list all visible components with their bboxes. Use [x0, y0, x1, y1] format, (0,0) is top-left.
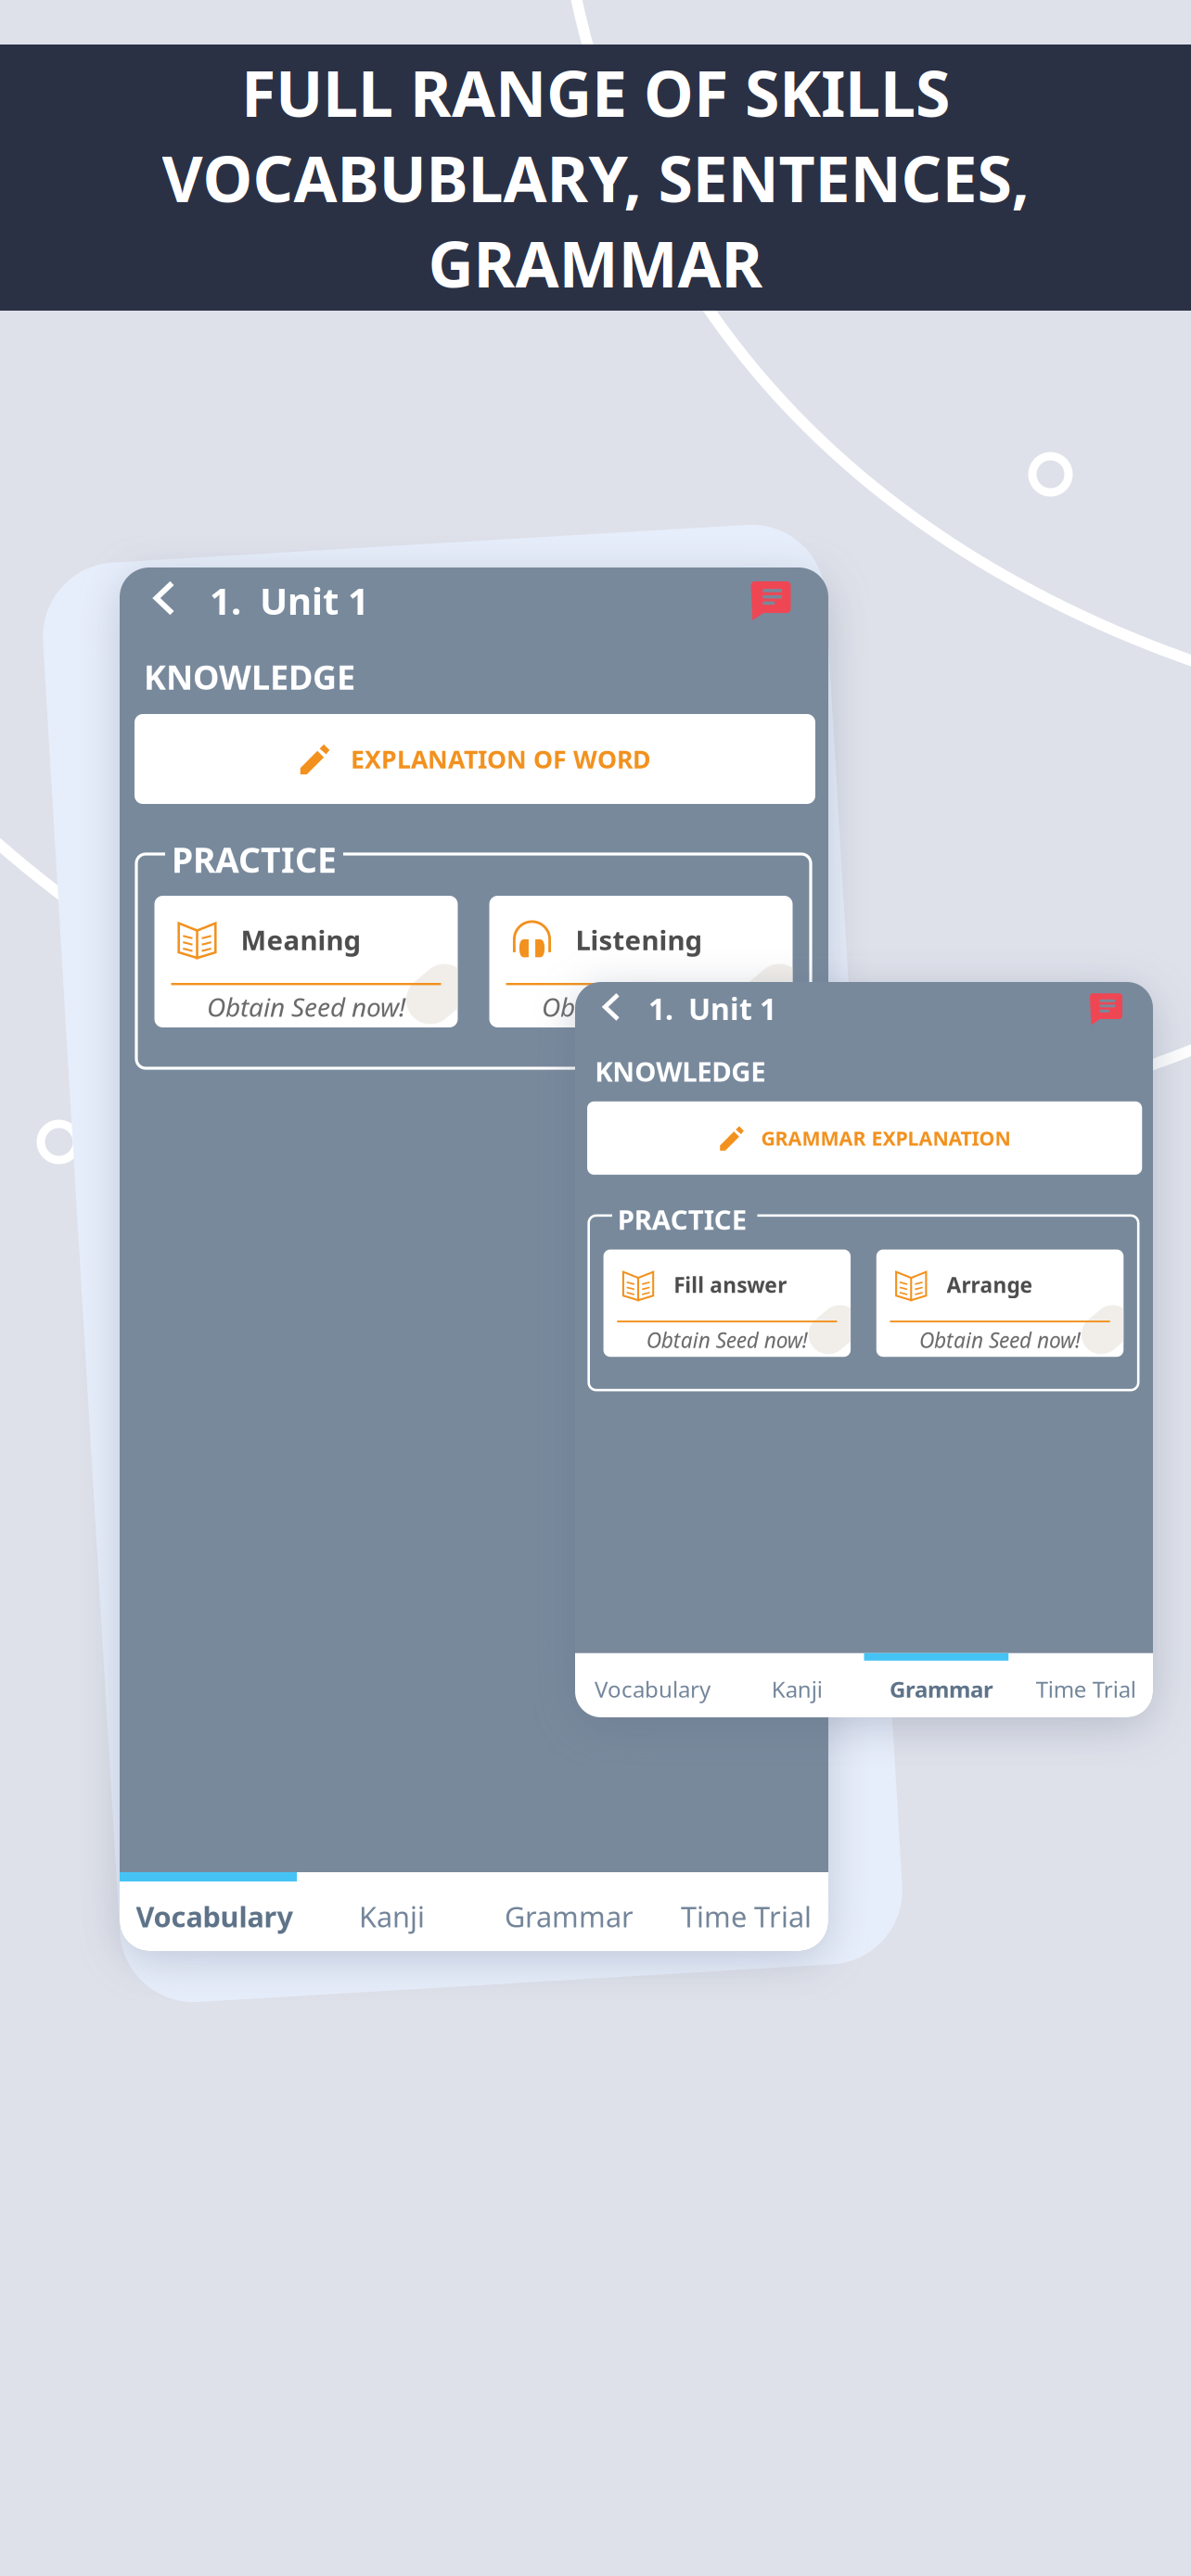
staticText: GRAMMAR EXPLANATION: [761, 1125, 1011, 1151]
button[interactable]: Grammar: [869, 1661, 1014, 1717]
staticText: Obtain Seed now!: [646, 1326, 808, 1354]
staticText: Listening: [576, 922, 703, 958]
staticText: Obtain Seed now!: [207, 989, 405, 1024]
staticText: Obtain Seed now!: [542, 989, 740, 1024]
staticText: GRAMMAR: [428, 221, 763, 305]
staticText: KNOWLEDGE: [595, 1053, 765, 1089]
staticText: Arrange: [947, 1271, 1033, 1299]
button[interactable]: Vocabulary: [126, 1881, 303, 1951]
staticText: PRACTICE: [172, 836, 337, 882]
staticText: Kanji: [772, 1674, 823, 1704]
staticText: Time Trial: [1036, 1674, 1136, 1704]
staticText: Vocabulary: [595, 1674, 711, 1704]
staticText: Vocabulary: [136, 1897, 294, 1935]
staticText: PRACTICE: [617, 1201, 746, 1237]
staticText: Fill answer: [674, 1271, 787, 1299]
staticText: Kanji: [359, 1897, 425, 1935]
button[interactable]: Back: [592, 987, 631, 1027]
staticText: 1. Unit 1: [648, 989, 776, 1028]
button[interactable]: Messages: [1084, 987, 1128, 1031]
staticText: 1. Unit 1: [210, 576, 369, 625]
button[interactable]: Kanji: [725, 1661, 869, 1717]
staticText: Grammar: [505, 1897, 634, 1935]
button[interactable]: GRAMMAR EXPLANATION: [587, 1101, 1142, 1175]
button[interactable]: Messages: [744, 574, 798, 628]
staticText: Grammar: [890, 1674, 994, 1704]
button[interactable]: Back: [140, 574, 188, 622]
staticText: Meaning: [241, 922, 361, 958]
staticText: FULL RANGE OF SKILLS: [241, 50, 950, 134]
button[interactable]: Meaning: [154, 896, 458, 1027]
button[interactable]: Arrange: [876, 1250, 1124, 1357]
button[interactable]: Time Trial: [1014, 1661, 1158, 1717]
button[interactable]: Kanji: [303, 1881, 480, 1951]
button[interactable]: Grammar: [480, 1881, 658, 1951]
button[interactable]: Time Trial: [658, 1881, 835, 1951]
staticText: EXPLANATION OF WORD: [351, 743, 651, 775]
staticText: Time Trial: [681, 1897, 812, 1935]
staticText: VOCABUBLARY, SENTENCES,: [162, 136, 1029, 219]
button[interactable]: Listening: [489, 896, 793, 1027]
staticText: KNOWLEDGE: [144, 655, 355, 699]
button[interactable]: Vocabulary: [580, 1661, 725, 1717]
button[interactable]: Fill answer: [603, 1250, 851, 1357]
button[interactable]: EXPLANATION OF WORD: [134, 714, 815, 804]
staticText: Obtain Seed now!: [919, 1326, 1081, 1354]
